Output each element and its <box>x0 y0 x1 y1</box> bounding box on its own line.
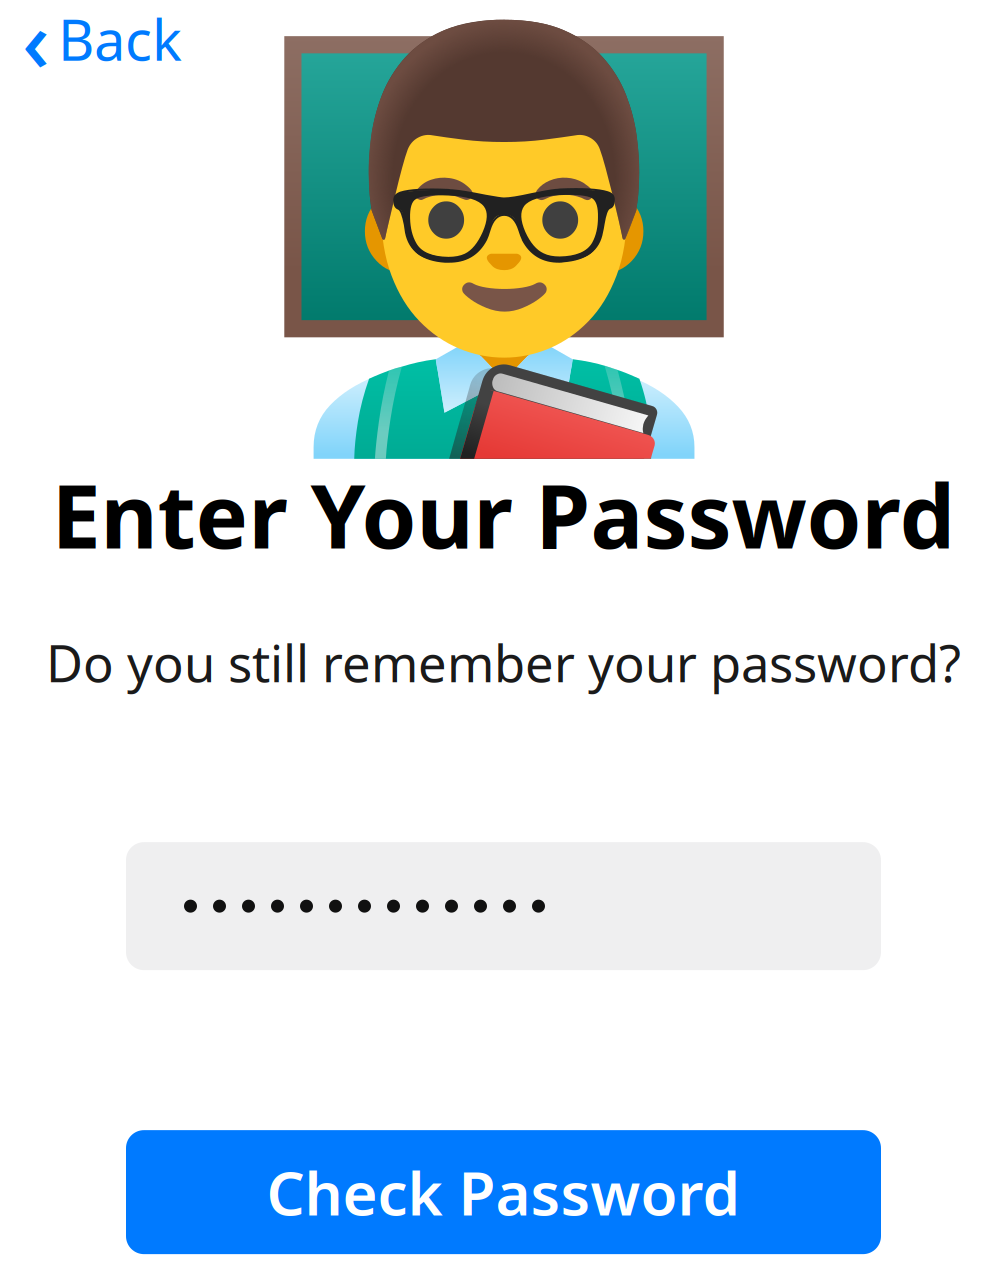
staticText: Do you still remember your password? <box>46 629 961 696</box>
staticText: 👨‍🏫 <box>254 10 752 467</box>
button[interactable]: ‹ <box>0 0 196 78</box>
staticText: Enter Your Password <box>51 456 955 573</box>
button[interactable]: Check Password <box>126 1130 881 1254</box>
staticText: Check Password <box>266 1152 740 1232</box>
staticText: Back <box>58 2 182 76</box>
staticText: ‹ <box>22 0 50 96</box>
button[interactable] <box>126 842 881 970</box>
